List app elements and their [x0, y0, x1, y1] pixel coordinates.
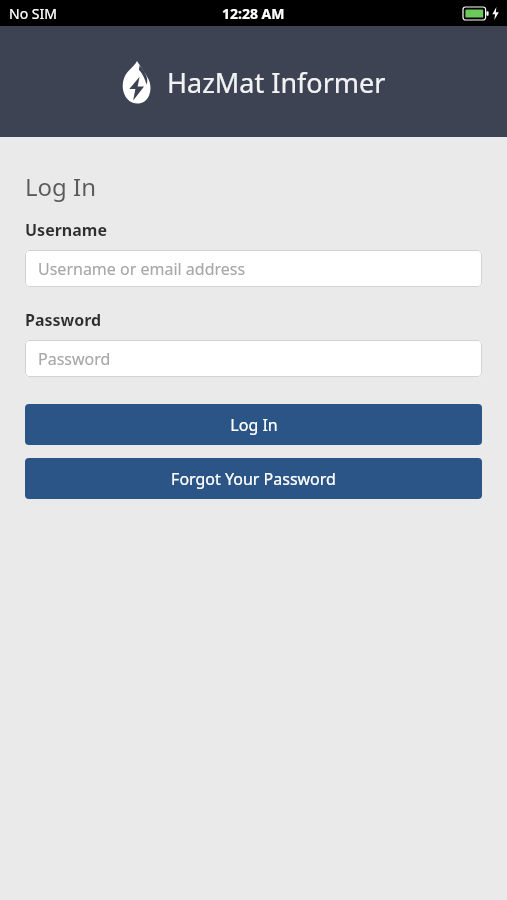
- staticText: Username or email address: [38, 258, 246, 280]
- staticText: Username: [25, 219, 107, 241]
- staticText: Forgot Your Password: [171, 468, 336, 490]
- staticText: HazMat Informer: [167, 64, 386, 101]
- staticText: Log In: [230, 414, 278, 436]
- staticText: No SIM: [9, 4, 57, 23]
- staticText: 12:28 AM: [222, 4, 285, 23]
- staticText: Password: [38, 348, 111, 370]
- button[interactable]: Username or email address: [25, 250, 482, 287]
- staticText: Password: [25, 309, 102, 331]
- staticText: Log In: [25, 170, 97, 203]
- button[interactable]: Password: [25, 340, 482, 377]
- button[interactable]: Forgot Your Password: [25, 458, 482, 499]
- button[interactable]: Log In: [25, 404, 482, 445]
